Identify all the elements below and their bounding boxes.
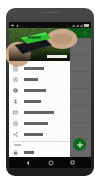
button[interactable]: Search (83, 31, 88, 36)
button[interactable] (9, 140, 91, 157)
button[interactable] (9, 55, 91, 72)
button[interactable] (9, 28, 70, 61)
button[interactable] (9, 106, 91, 123)
button[interactable] (9, 89, 91, 106)
button[interactable] (9, 147, 70, 157)
button[interactable] (9, 129, 70, 140)
button[interactable] (9, 72, 91, 89)
button[interactable]: Add (73, 138, 86, 151)
button[interactable] (9, 63, 70, 74)
button[interactable] (9, 85, 70, 96)
button[interactable] (9, 107, 70, 118)
button[interactable] (9, 118, 70, 129)
button[interactable]: Recents (68, 158, 77, 167)
button[interactable] (9, 74, 70, 85)
button[interactable]: Back (23, 158, 32, 167)
button[interactable]: Home (46, 158, 55, 167)
button[interactable] (9, 96, 70, 107)
button[interactable] (9, 123, 91, 140)
button[interactable] (9, 38, 91, 55)
